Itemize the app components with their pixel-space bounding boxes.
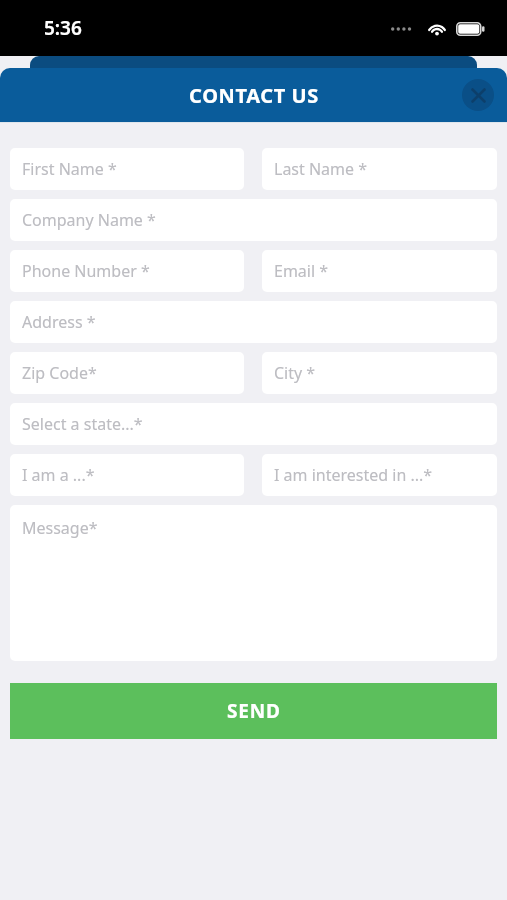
staticText: Phone Number * (22, 260, 150, 282)
button[interactable]: I am interested in ...* (262, 454, 497, 496)
button[interactable]: First Name * (10, 148, 244, 190)
staticText: SEND (227, 698, 281, 724)
button[interactable]: Zip Code* (10, 352, 244, 394)
staticText: Email * (274, 260, 329, 282)
button[interactable]: SEND (10, 683, 497, 739)
staticText: First Name * (22, 158, 117, 180)
button[interactable]: Phone Number * (10, 250, 244, 292)
staticText: Select a state...* (22, 413, 143, 435)
staticText: Zip Code* (22, 362, 97, 384)
staticText: I am interested in ...* (274, 464, 433, 486)
staticText: CONTACT US (189, 82, 319, 109)
button[interactable]: Message* (10, 505, 497, 661)
button[interactable]: Email * (262, 250, 497, 292)
staticText: Last Name * (274, 158, 368, 180)
staticText: Address * (22, 311, 96, 333)
button[interactable]: I am a ...* (10, 454, 244, 496)
staticText: Message* (22, 517, 98, 539)
button[interactable]: Close (462, 79, 494, 111)
button[interactable]: City * (262, 352, 497, 394)
button[interactable]: Select a state...* (10, 403, 497, 445)
button[interactable]: Address * (10, 301, 497, 343)
button[interactable]: Last Name * (262, 148, 497, 190)
staticText: Company Name * (22, 209, 156, 231)
staticText: City * (274, 362, 316, 384)
staticText: I am a ...* (22, 464, 95, 486)
staticText: 5:36 (44, 15, 82, 41)
button[interactable]: Company Name * (10, 199, 497, 241)
